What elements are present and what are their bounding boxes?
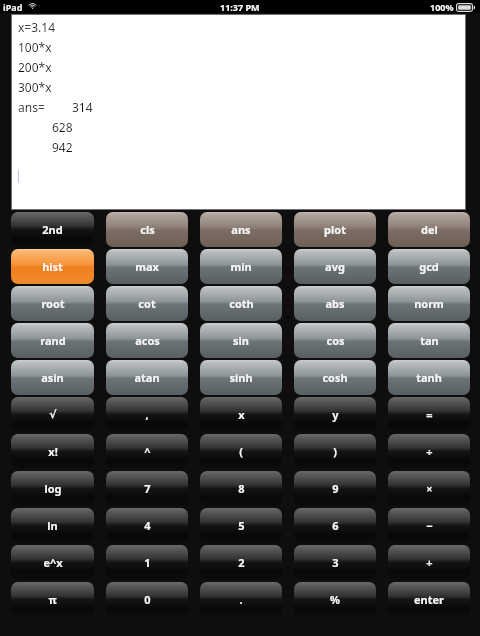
button[interactable]: tan [388,323,470,358]
staticText: tanh [416,370,442,385]
button[interactable]: hist [11,249,94,284]
button[interactable]: rand [11,323,94,358]
button[interactable]: x=3.14 [12,15,465,209]
button[interactable]: 4 [106,508,188,543]
staticText: asin [41,370,64,385]
button[interactable]: x! [11,434,94,469]
staticText: 4 [144,518,151,533]
staticText: sinh [229,370,253,385]
button[interactable]: ans [200,212,282,247]
button[interactable]: 6 [294,508,376,543]
button[interactable]: − [388,508,470,543]
staticText: del [421,222,438,237]
button[interactable]: acos [106,323,188,358]
staticText: ( [239,444,243,459]
button[interactable]: cot [106,286,188,321]
staticText: x=3.14 [18,19,56,35]
staticText: cos [326,333,345,348]
staticText: 11:37 PM [220,1,260,13]
staticText: gcd [419,259,439,274]
button[interactable]: 5 [200,508,282,543]
button[interactable]: abs [294,286,376,321]
staticText: ) [333,444,337,459]
staticText: − [426,518,433,533]
staticText: log [44,481,62,496]
staticText: rand [40,333,66,348]
button[interactable]: ^ [106,434,188,469]
staticText: ÷ [426,444,433,459]
button[interactable]: norm [388,286,470,321]
staticText: root [41,296,65,311]
staticText: , [145,407,149,422]
button[interactable]: log [11,471,94,506]
button[interactable]: avg [294,249,376,284]
button[interactable]: π [11,582,94,617]
staticText: 2 [238,555,245,570]
staticText: 7 [144,481,151,496]
staticText: 1 [144,555,151,570]
staticText: cosh [322,370,348,385]
staticText: 8 [238,481,245,496]
button[interactable]: atan [106,360,188,395]
button[interactable]: 1 [106,545,188,580]
button[interactable]: max [106,249,188,284]
button[interactable]: 3 [294,545,376,580]
button[interactable]: % [294,582,376,617]
button[interactable]: root [11,286,94,321]
button[interactable]: cls [106,212,188,247]
staticText: 9 [332,481,339,496]
button[interactable]: √ [11,397,94,432]
button[interactable]: × [388,471,470,506]
button[interactable]: y [294,397,376,432]
staticText: 6 [332,518,339,533]
button[interactable]: , [106,397,188,432]
staticText: 3 [332,555,339,570]
staticText: = [426,407,433,422]
button[interactable]: asin [11,360,94,395]
button[interactable]: ( [200,434,282,469]
button[interactable]: gcd [388,249,470,284]
staticText: tan [420,333,439,348]
staticText: 314 [72,99,93,115]
staticText: max [135,259,159,274]
staticText: 2nd [42,222,63,237]
button[interactable]: ÷ [388,434,470,469]
button[interactable]: 7 [106,471,188,506]
button[interactable]: cosh [294,360,376,395]
button[interactable]: sin [200,323,282,358]
staticText: coth [229,296,254,311]
staticText: x [238,407,245,422]
button[interactable]: x [200,397,282,432]
button[interactable]: + [388,545,470,580]
button[interactable]: 2 [200,545,282,580]
button[interactable]: ln [11,508,94,543]
button[interactable]: cos [294,323,376,358]
button[interactable]: 0 [106,582,188,617]
staticText: 200*x [18,59,52,75]
button[interactable]: coth [200,286,282,321]
staticText: acos [135,333,160,348]
button[interactable]: . [200,582,282,617]
staticText: plot [324,222,346,237]
staticText: cot [138,296,156,311]
staticText: cls [140,222,155,237]
button[interactable]: 2nd [11,212,94,247]
button[interactable]: ) [294,434,376,469]
button[interactable]: e^x [11,545,94,580]
staticText: 300*x [18,79,52,95]
staticText: atan [134,370,160,385]
other: Wi-Fi [27,2,38,13]
button[interactable]: plot [294,212,376,247]
button[interactable]: = [388,397,470,432]
other: Battery full [456,3,476,12]
button[interactable]: 9 [294,471,376,506]
button[interactable]: sinh [200,360,282,395]
button[interactable]: enter [388,582,470,617]
staticText: iPad [3,1,23,13]
button[interactable]: 8 [200,471,282,506]
button[interactable]: del [388,212,470,247]
button[interactable]: tanh [388,360,470,395]
button[interactable]: min [200,249,282,284]
staticText: min [230,259,252,274]
staticText: ans [231,222,251,237]
